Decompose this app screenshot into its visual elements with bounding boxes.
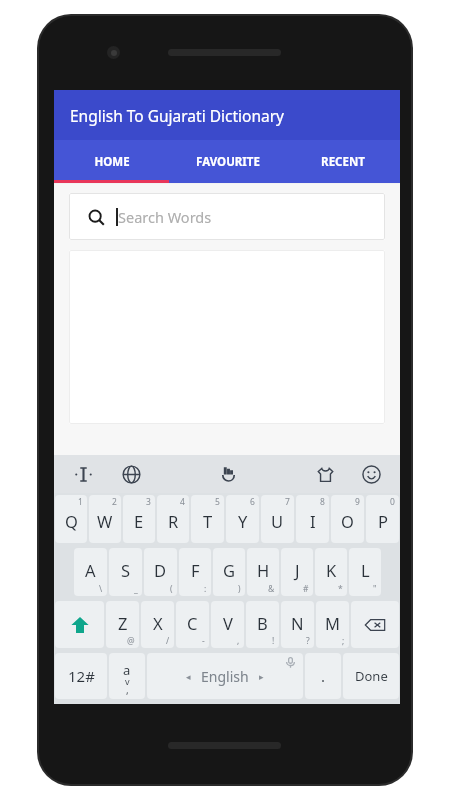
staticText: - (202, 635, 205, 647)
button[interactable]: ◂ (147, 653, 303, 699)
staticText: : (204, 583, 207, 595)
staticText: C (187, 612, 198, 634)
button[interactable]: A (74, 548, 107, 596)
button[interactable]: Change language (118, 461, 144, 487)
staticText: 5 (215, 496, 220, 508)
button[interactable]: 2 (89, 495, 121, 543)
staticText: N (291, 612, 304, 634)
staticText: 7 (285, 496, 290, 508)
button[interactable]: 0 (366, 495, 399, 543)
button[interactable]: Handwriting (215, 461, 241, 487)
staticText: S (121, 559, 131, 581)
staticText: a (123, 661, 131, 679)
staticText: English (201, 667, 249, 686)
staticText: 3 (146, 496, 151, 508)
button[interactable]: L (349, 548, 381, 596)
staticText: / (166, 635, 170, 647)
staticText: Q (65, 510, 78, 532)
button[interactable]: N (281, 601, 314, 648)
button[interactable]: . (305, 653, 341, 699)
button[interactable]: Z (106, 601, 139, 648)
staticText: R (168, 510, 179, 532)
button[interactable]: H (247, 548, 279, 596)
button[interactable]: Search (69, 193, 385, 240)
button[interactable]: B (246, 601, 279, 648)
staticText: @ (127, 635, 135, 647)
staticText: H (257, 559, 270, 581)
staticText: F (191, 559, 200, 581)
button[interactable]: D (144, 548, 177, 596)
staticText: ? (306, 635, 310, 647)
staticText: # (303, 583, 309, 595)
staticText: D (154, 559, 167, 581)
staticText: 0 (390, 496, 395, 508)
staticText: \ (99, 583, 103, 595)
button[interactable]: V (211, 601, 244, 648)
button[interactable]: 4 (157, 495, 189, 543)
other: Voice input (285, 657, 296, 668)
button[interactable]: K (315, 548, 347, 596)
staticText: O (341, 510, 354, 532)
button[interactable]: 8 (296, 495, 329, 543)
button[interactable]: C (176, 601, 209, 648)
button[interactable]: J (281, 548, 313, 596)
staticText: W (97, 510, 113, 532)
staticText: FAVOURITE (196, 154, 260, 170)
staticText: ; (342, 635, 345, 647)
button[interactable]: 5 (191, 495, 224, 543)
staticText: X (153, 612, 163, 634)
staticText: E (134, 510, 144, 532)
button[interactable]: Text cursor (70, 461, 96, 487)
staticText: 8 (320, 496, 325, 508)
staticText: HOME (94, 154, 130, 170)
button[interactable]: S (109, 548, 142, 596)
staticText: K (326, 559, 337, 581)
button[interactable]: Done (343, 653, 399, 699)
staticText: Done (355, 667, 388, 685)
button[interactable]: Emoji (358, 461, 384, 487)
staticText: U (271, 510, 284, 532)
staticText: T (203, 510, 213, 532)
button[interactable]: 6 (226, 495, 259, 543)
staticText: ▸ (259, 672, 264, 682)
staticText: 12# (68, 666, 95, 686)
staticText: 2 (112, 496, 117, 508)
button[interactable]: F (179, 548, 211, 596)
button[interactable]: G (213, 548, 245, 596)
staticText: 1 (78, 496, 83, 508)
staticText: ) (238, 583, 241, 595)
staticText: M (325, 612, 340, 634)
button[interactable]: 7 (261, 495, 294, 543)
button[interactable]: X (141, 601, 174, 648)
button[interactable]: HOME (54, 140, 170, 183)
button[interactable]: Backspace (351, 601, 399, 648)
button[interactable]: Shift (55, 601, 104, 648)
staticText: Y (238, 510, 248, 532)
other: Search (88, 209, 105, 226)
button[interactable]: 3 (123, 495, 155, 543)
staticText: , (126, 683, 129, 697)
button[interactable]: 9 (331, 495, 364, 543)
button[interactable]: RECENT (285, 140, 400, 183)
staticText: L (361, 559, 370, 581)
staticText: . (321, 666, 326, 686)
staticText: _ (134, 583, 138, 595)
button[interactable]: Theme (312, 461, 338, 487)
staticText: * (338, 583, 343, 595)
staticText: J (295, 559, 300, 581)
staticText: ! (272, 635, 275, 647)
button[interactable]: Input options (109, 653, 145, 699)
button[interactable]: M (316, 601, 349, 648)
staticText: Z (118, 612, 128, 634)
button[interactable]: 1 (55, 495, 87, 543)
staticText: G (223, 559, 236, 581)
staticText: RECENT (321, 154, 365, 170)
button[interactable]: 12# (55, 653, 107, 699)
staticText: P (378, 510, 388, 532)
staticText: B (257, 612, 268, 634)
staticText: English To Gujarati Dictionary (70, 105, 284, 126)
button[interactable]: FAVOURITE (170, 140, 285, 183)
staticText: 9 (355, 496, 360, 508)
staticText: A (85, 559, 96, 581)
